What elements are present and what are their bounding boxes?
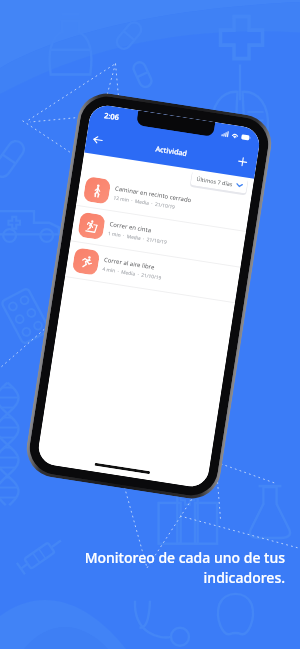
staticText: 2:06	[103, 110, 120, 122]
button[interactable]: Últimos 7 días	[190, 170, 248, 194]
button[interactable]: Caminar en recinto cerrado	[76, 170, 251, 232]
staticText: Caminar en recinto cerrado	[114, 185, 193, 204]
button[interactable]: Correr al aire libre	[65, 241, 240, 303]
staticText: Actividad	[155, 143, 188, 158]
staticText: 4 min · Media · 21/10/19	[102, 266, 162, 282]
button[interactable]: Correr en cinta	[70, 206, 246, 268]
staticText: Últimos 7 días	[196, 175, 234, 187]
staticText: Correr al aire libre	[103, 256, 155, 271]
staticText: 1 min · Media · 21/10/19	[107, 230, 168, 246]
button[interactable]: Back	[87, 129, 108, 149]
staticText: Monitoreo de cada uno de tus indicadores…	[16, 548, 285, 587]
button[interactable]: Add	[232, 151, 253, 172]
staticText: Correr en cinta	[109, 220, 153, 235]
staticText: 12 min · Media · 21/10/19	[113, 194, 175, 211]
